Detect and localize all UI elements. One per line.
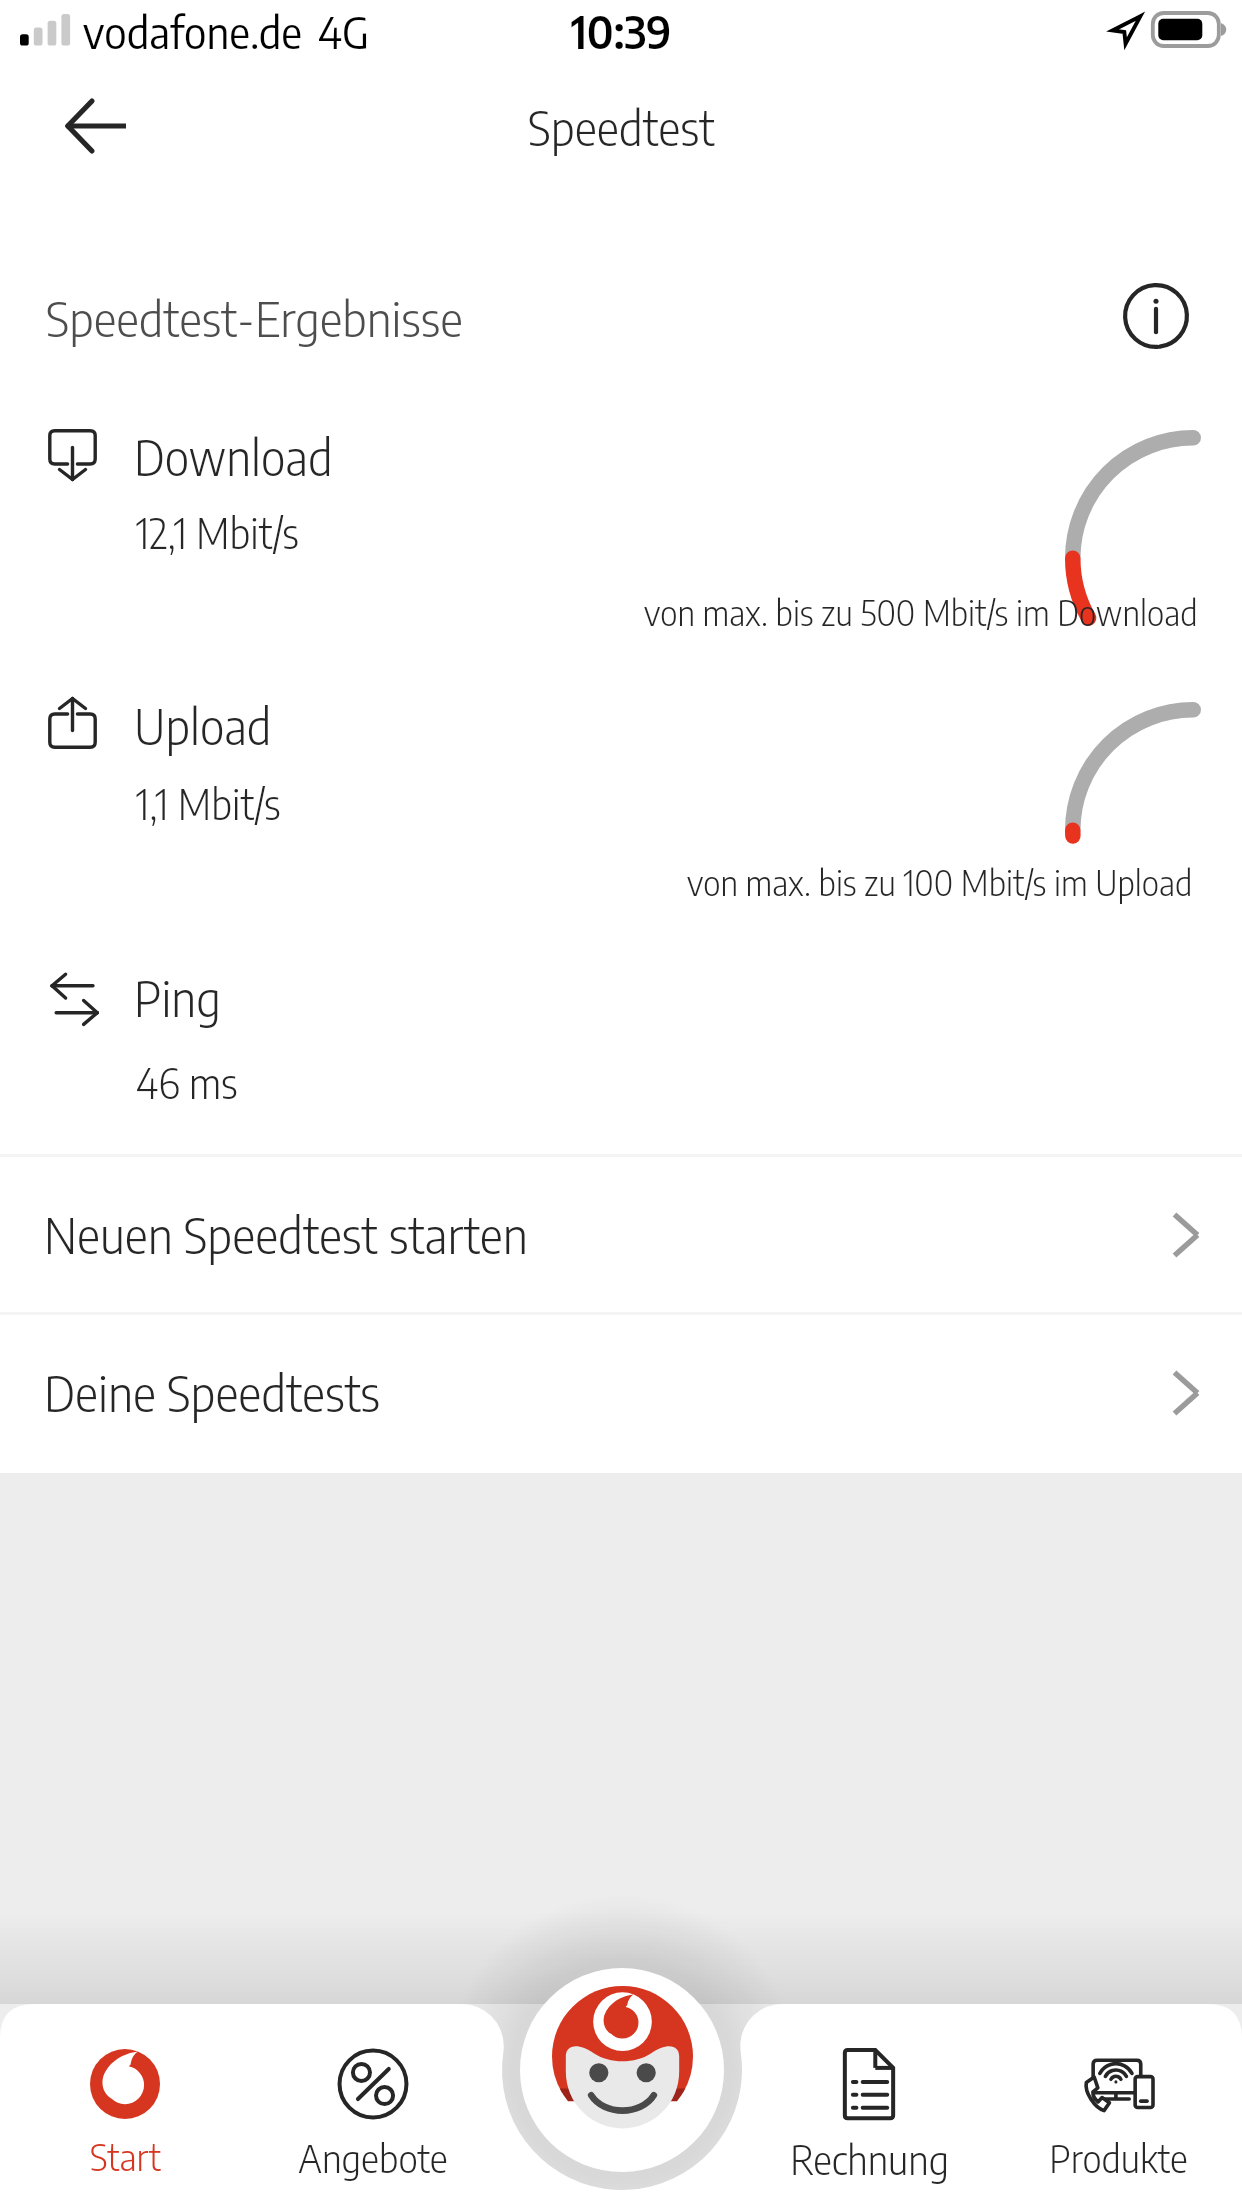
staticText: von max. bis zu 500 Mbit/s im Download [644,591,1198,633]
button[interactable]: Produkte [1008,2030,1228,2205]
button[interactable]: Profil [520,1968,724,2172]
button[interactable]: Information [1110,270,1202,362]
staticText: 46 ms [136,1057,238,1108]
staticText: 12,1 Mbit/s [136,507,299,558]
staticText: vodafone.de [83,5,303,59]
staticText: Start [90,2134,161,2179]
staticText: von max. bis zu 100 Mbit/s im Upload [687,861,1193,903]
staticText: Upload [134,696,272,756]
staticText: Produkte [1049,2134,1188,2181]
staticText: Download [134,427,333,487]
staticText: Speedtest-Ergebnisse [46,288,463,348]
staticText: Speedtest [528,98,715,156]
button[interactable]: Start [15,2030,235,2205]
staticText: 4G [318,5,369,59]
button[interactable]: Deine Speedtests [0,1315,1242,1470]
staticText: Angebote [298,2134,448,2181]
staticText: Ping [134,968,221,1028]
button[interactable]: Neuen Speedtest starten [0,1157,1242,1312]
staticText: Rechnung [790,2134,949,2183]
staticText: 10:39 [571,4,672,59]
button[interactable]: Angebote [263,2030,483,2205]
staticText: 1,1 Mbit/s [136,778,281,829]
staticText: Neuen Speedtest starten [44,1204,528,1265]
button[interactable]: Rechnung [759,2030,979,2205]
button[interactable]: Back [18,71,128,181]
staticText: Deine Speedtests [44,1362,381,1423]
